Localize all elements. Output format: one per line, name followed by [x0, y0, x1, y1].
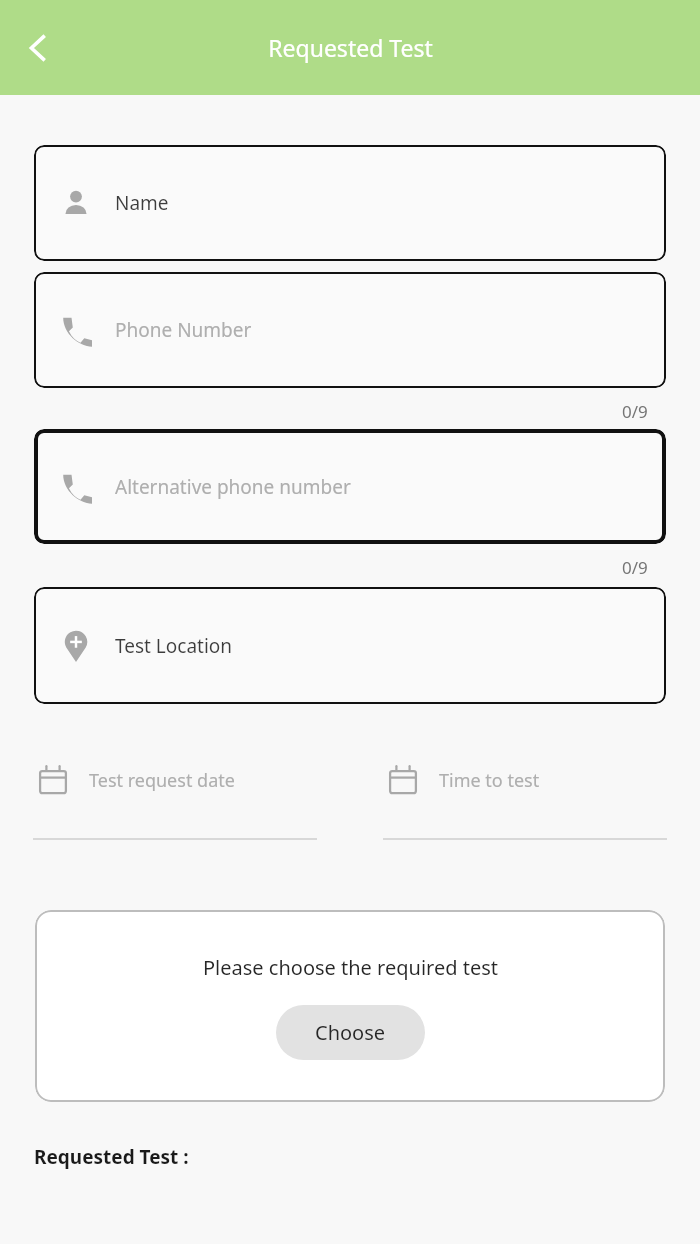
staticText: Test Location	[115, 633, 233, 659]
button[interactable]: Phone Number	[34, 272, 666, 388]
button[interactable]: Test Location	[34, 587, 666, 704]
staticText: Alternative phone number	[115, 474, 351, 500]
staticText: Please choose the required test	[203, 954, 498, 981]
staticText: Phone Number	[115, 317, 252, 343]
staticText: 0/9	[622, 400, 648, 423]
button[interactable]: Back	[12, 22, 64, 74]
staticText: Test request date	[89, 768, 235, 793]
button[interactable]: Time to test	[383, 760, 667, 840]
staticText: Time to test	[439, 768, 540, 793]
staticText: 0/9	[622, 556, 648, 579]
button[interactable]: Alternative phone number	[34, 429, 666, 544]
staticText: Requested Test	[268, 32, 433, 63]
staticText: Name	[115, 190, 169, 216]
button[interactable]: Choose	[276, 1005, 425, 1060]
button[interactable]: Test request date	[33, 760, 317, 840]
button[interactable]: Name	[34, 145, 666, 261]
staticText: Choose	[315, 1019, 386, 1046]
staticText: Requested Test :	[34, 1144, 189, 1170]
